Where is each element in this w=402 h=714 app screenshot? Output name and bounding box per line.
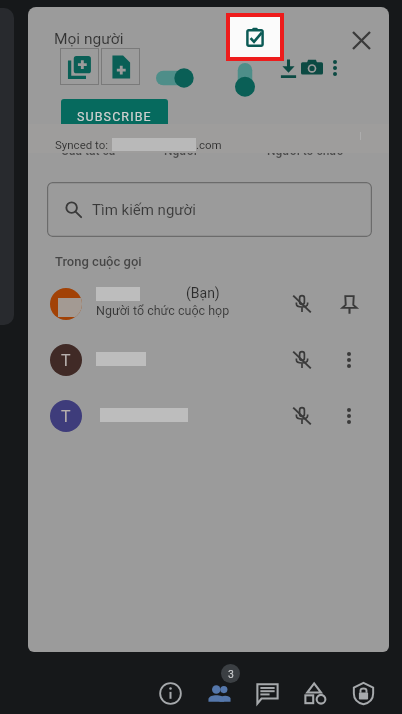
button[interactable]: Toggle option [231, 57, 259, 109]
staticText: (Bạn) [186, 285, 220, 301]
staticText: 3 [228, 668, 234, 680]
staticText: T [61, 351, 71, 370]
button[interactable]: Pin [329, 284, 369, 324]
staticText: Người tổ chức cuộc họp [96, 303, 230, 318]
staticText: SUBSCRIBE [77, 109, 152, 124]
button[interactable]: T [28, 388, 389, 444]
staticText: Trong cuộc gọi [55, 254, 142, 269]
button[interactable]: Của tất cả [38, 137, 138, 165]
button[interactable]: Activities [291, 673, 339, 713]
button[interactable]: Download [272, 52, 304, 84]
staticText: .com [196, 138, 222, 151]
button[interactable]: Add document [101, 48, 140, 85]
button[interactable]: People [195, 673, 243, 713]
button[interactable]: Người [130, 137, 230, 165]
button[interactable]: SUBSCRIBE [61, 99, 168, 133]
button[interactable]: Người tổ chức [255, 137, 355, 165]
button[interactable]: More options [329, 396, 369, 436]
button[interactable]: More options [329, 340, 369, 380]
staticText: T [61, 407, 71, 426]
staticText: Tìm kiếm người [92, 201, 196, 219]
button[interactable]: Microphone off [282, 340, 322, 380]
button[interactable]: Meeting notes [230, 17, 280, 57]
button[interactable]: Microphone off [282, 396, 322, 436]
staticText: Người tổ chức [267, 144, 344, 158]
button[interactable]: Info [146, 673, 194, 713]
button[interactable]: T [28, 332, 389, 388]
button[interactable]: Camera [296, 52, 328, 84]
button[interactable]: More options [319, 52, 351, 84]
button[interactable]: Add to collection [60, 48, 99, 85]
button[interactable]: Toggle option [152, 64, 202, 92]
staticText: Của tất cả [61, 144, 116, 158]
button[interactable]: Chat [243, 673, 291, 713]
button[interactable]: Tìm kiếm người [47, 182, 372, 237]
button[interactable]: Security [339, 673, 387, 713]
staticText: Mọi người [54, 30, 124, 48]
staticText: Synced to: [55, 138, 109, 151]
staticText: Người [164, 144, 197, 158]
button[interactable]: Microphone off [282, 284, 322, 324]
button[interactable]: (Bạn) [28, 276, 389, 332]
button[interactable]: Close [341, 20, 381, 60]
